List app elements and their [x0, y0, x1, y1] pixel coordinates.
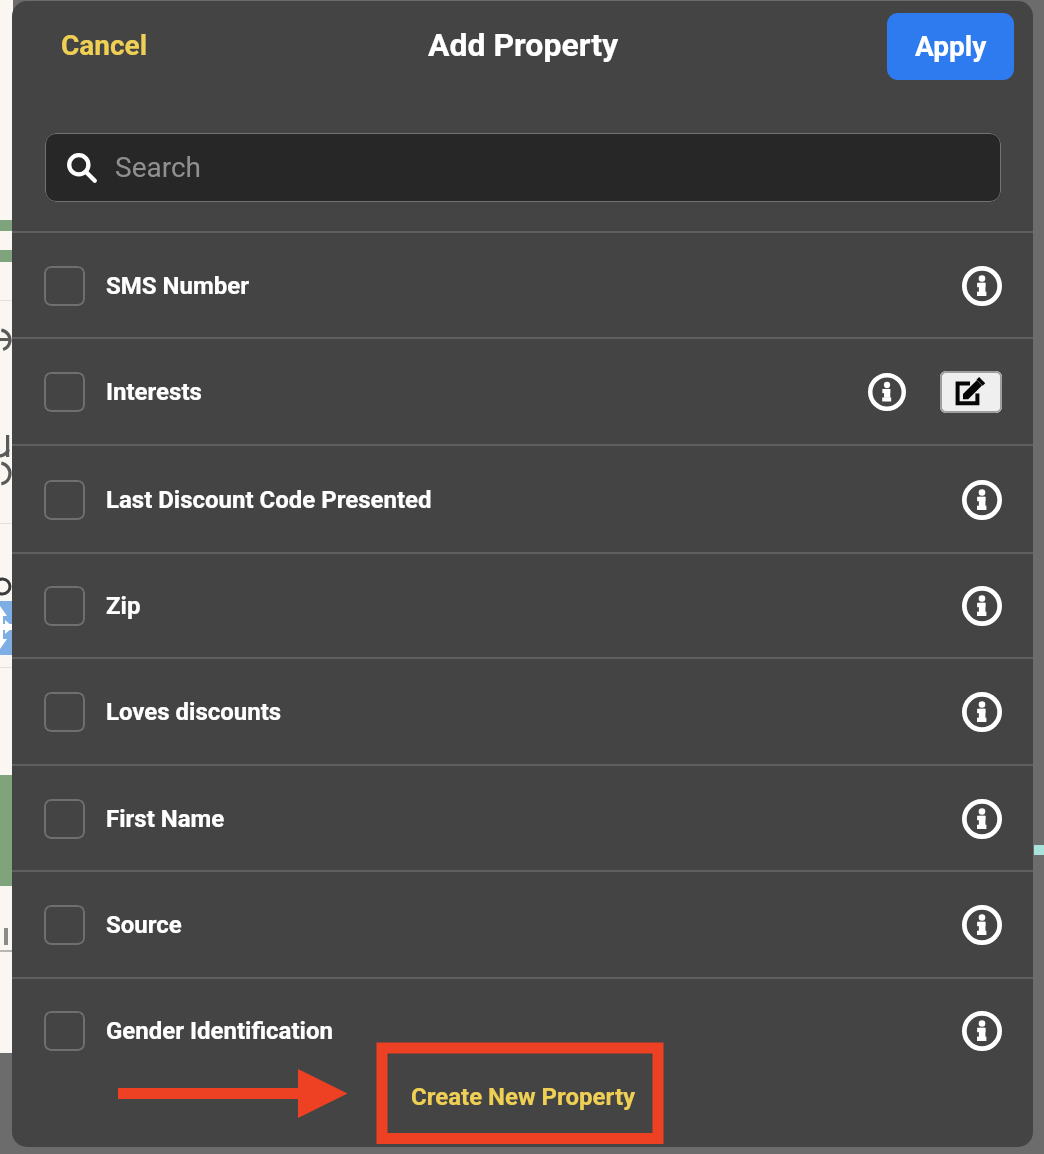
button[interactable]: Cancel [52, 17, 156, 73]
button[interactable]: Search [45, 133, 1001, 202]
staticText: Create New Property [411, 1083, 636, 1111]
button[interactable]: Edit Interests [940, 371, 1002, 413]
button[interactable]: Select Gender Identification [44, 1011, 85, 1051]
button[interactable]: Info about Zip [960, 584, 1004, 628]
staticText: Source [106, 911, 182, 939]
staticText: First Name [106, 805, 225, 833]
staticText: Loves discounts [106, 698, 282, 726]
button[interactable]: Info about SMS Number [960, 264, 1004, 308]
staticText: Search [115, 151, 202, 184]
button[interactable]: Select Zip [12, 554, 1033, 658]
staticText: Interests [106, 378, 202, 406]
button[interactable]: Select Source [44, 905, 85, 945]
button[interactable]: Select Interests [44, 372, 85, 412]
button[interactable]: Info about Loves discounts [960, 690, 1004, 734]
button[interactable]: Apply [887, 13, 1014, 80]
staticText: Zip [106, 592, 141, 620]
button[interactable]: Info about Gender Identification [960, 1009, 1004, 1053]
button[interactable]: Info about First Name [960, 797, 1004, 841]
button[interactable]: Select Loves discounts [12, 659, 1033, 765]
button[interactable]: Create New Property [392, 1069, 654, 1125]
button[interactable]: Info about Interests [865, 370, 909, 414]
button[interactable]: Select Last Discount Code Presented [12, 446, 1033, 553]
button[interactable]: Select Loves discounts [44, 692, 85, 732]
button[interactable]: Select First Name [44, 799, 85, 839]
button[interactable]: Select First Name [12, 766, 1033, 872]
staticText: Add Property [428, 26, 619, 64]
staticText: SMS Number [106, 272, 249, 300]
button[interactable]: Select Source [12, 872, 1033, 978]
button[interactable]: Select Gender Identification [12, 979, 1033, 1082]
staticText: Gender Identification [106, 1017, 333, 1045]
button[interactable]: Select Interests [12, 339, 1033, 445]
button[interactable]: Select SMS Number [12, 233, 1033, 338]
button[interactable]: Info about Last Discount Code Presented [960, 478, 1004, 522]
staticText: Last Discount Code Presented [106, 486, 432, 514]
button[interactable]: Info about Source [960, 903, 1004, 947]
button[interactable]: Select Zip [44, 586, 85, 626]
staticText: Apply [915, 30, 987, 63]
staticText: Cancel [61, 29, 148, 62]
button[interactable]: Select Last Discount Code Presented [44, 480, 85, 520]
button[interactable]: Select SMS Number [44, 266, 85, 306]
